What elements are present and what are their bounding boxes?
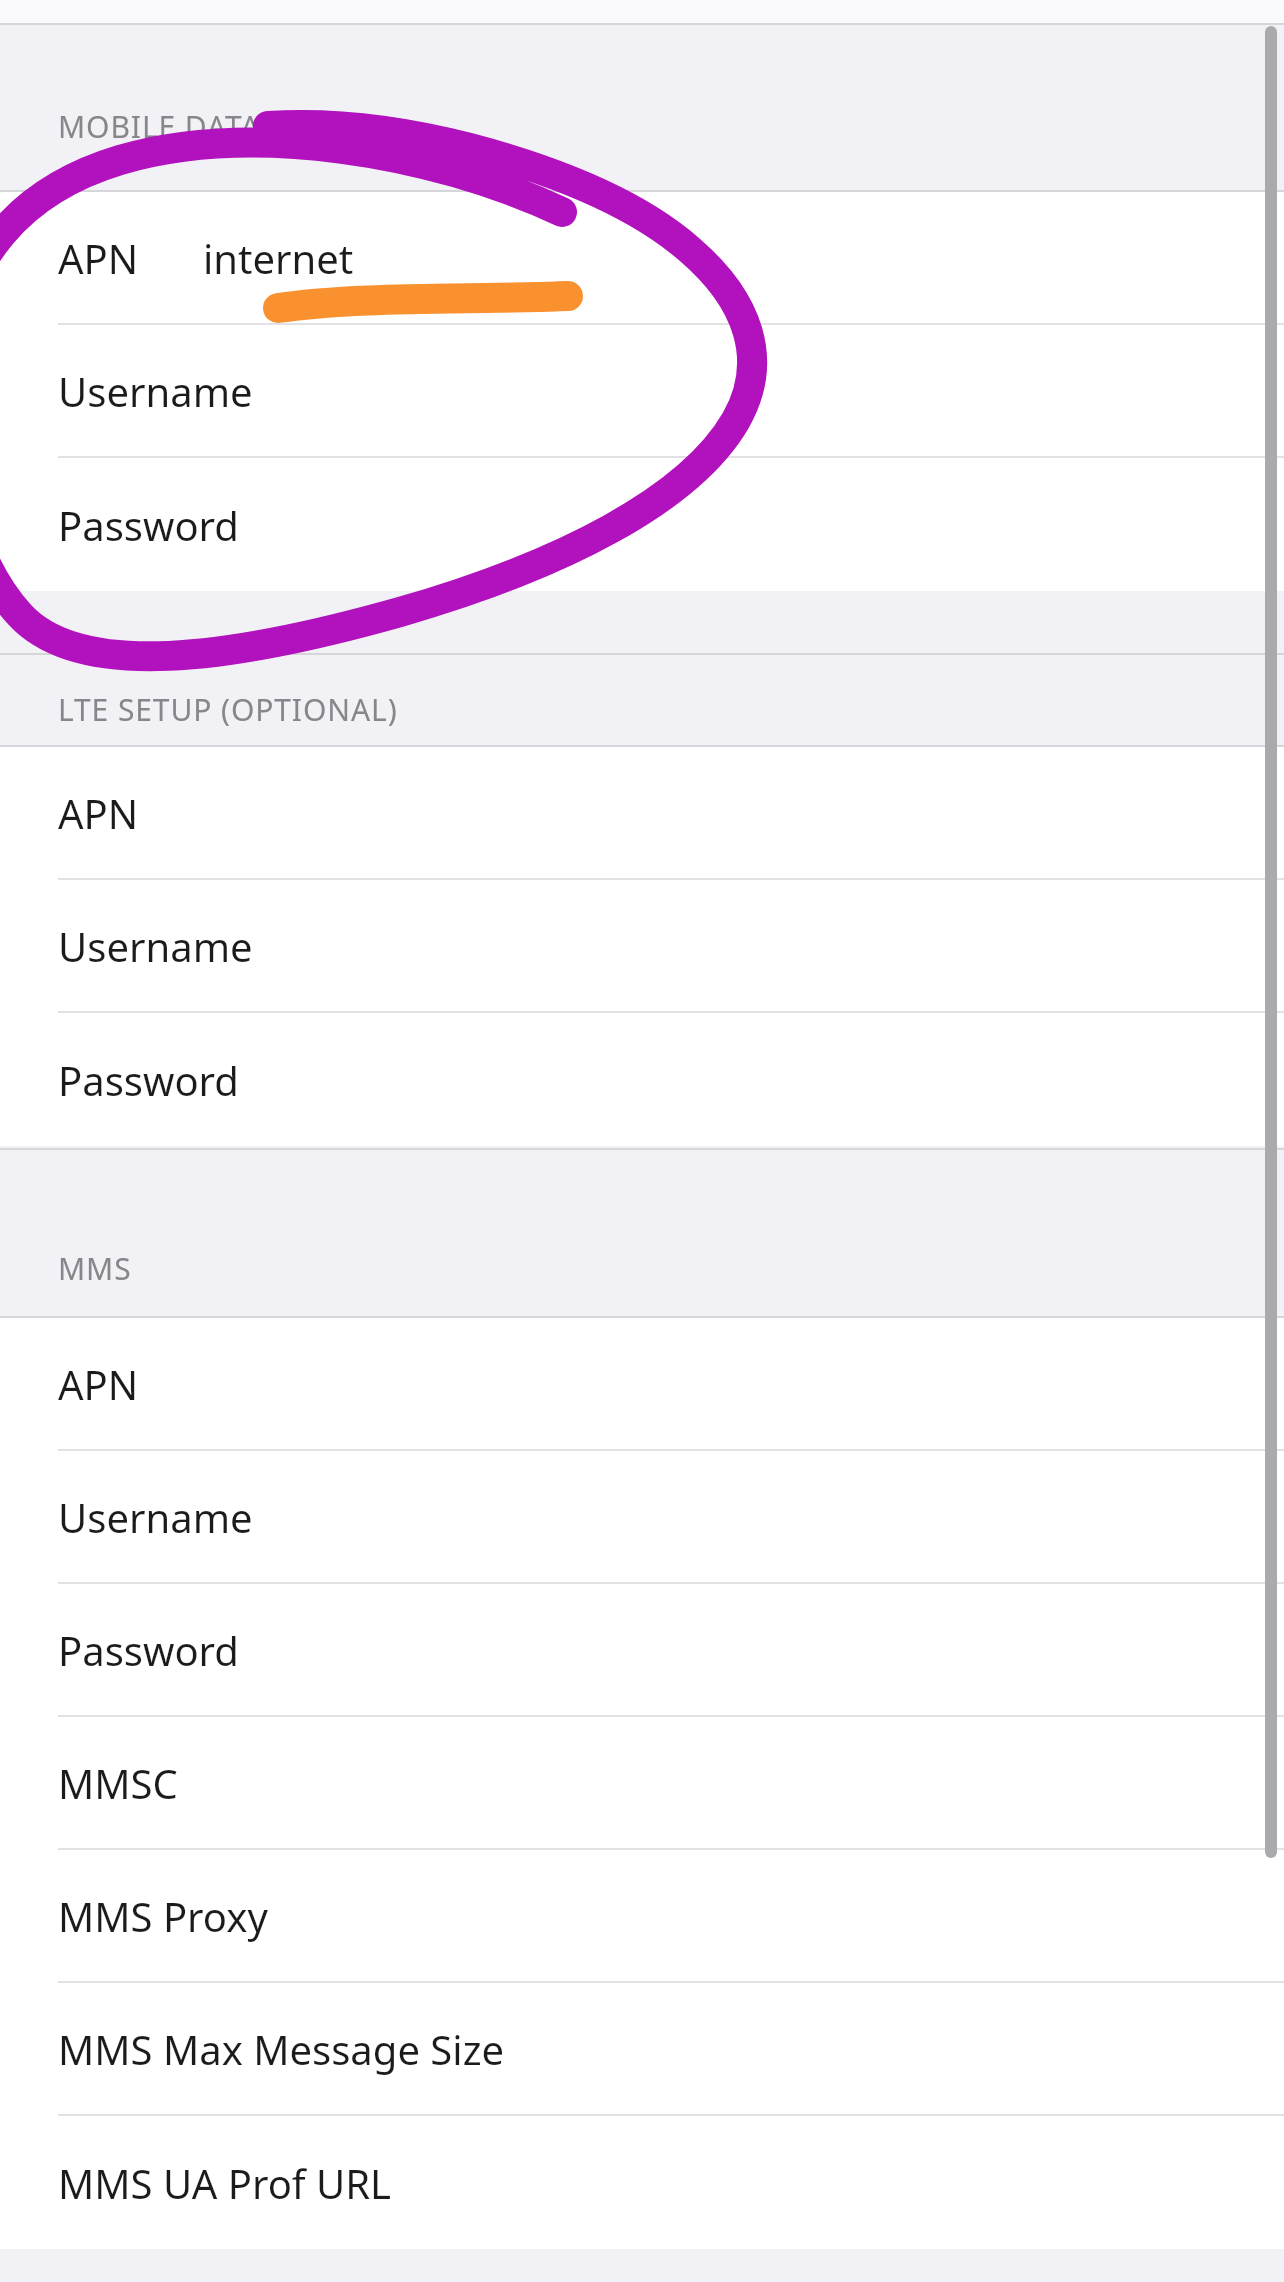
staticText: APN [58, 1357, 139, 1411]
staticText: MMS UA Prof URL [58, 2156, 392, 2210]
button[interactable]: MMSC [0, 1717, 1284, 1848]
staticText: MMS Proxy [58, 1889, 268, 1943]
button[interactable]: Username [0, 1451, 1284, 1582]
staticText: Password [58, 1623, 239, 1677]
staticText: internet [203, 231, 354, 285]
button[interactable]: Password [0, 1013, 1284, 1146]
staticText: APN [58, 786, 139, 840]
button[interactable]: MMS Proxy [0, 1850, 1284, 1981]
button[interactable]: Password [0, 1584, 1284, 1715]
staticText: Password [58, 498, 239, 552]
staticText: Password [58, 1053, 239, 1107]
staticText: MMS Max Message Size [58, 2022, 504, 2076]
staticText: MMSC [58, 1756, 178, 1810]
button[interactable]: APN [0, 747, 1284, 878]
button[interactable]: MMS UA Prof URL [0, 2116, 1284, 2249]
button[interactable]: APN [0, 1318, 1284, 1449]
staticText: Username [58, 919, 253, 973]
button[interactable]: Password [0, 458, 1284, 591]
staticText: MMS [58, 1248, 132, 1289]
button[interactable]: MMS Max Message Size [0, 1983, 1284, 2114]
staticText: Username [58, 364, 253, 418]
staticText: Username [58, 1490, 253, 1544]
button[interactable]: APN [0, 192, 1284, 323]
staticText: LTE SETUP (OPTIONAL) [58, 689, 398, 730]
staticText: APN [58, 231, 139, 285]
staticText: MOBILE DATA [58, 106, 261, 147]
button[interactable]: Username [0, 325, 1284, 456]
button[interactable]: Username [0, 880, 1284, 1011]
